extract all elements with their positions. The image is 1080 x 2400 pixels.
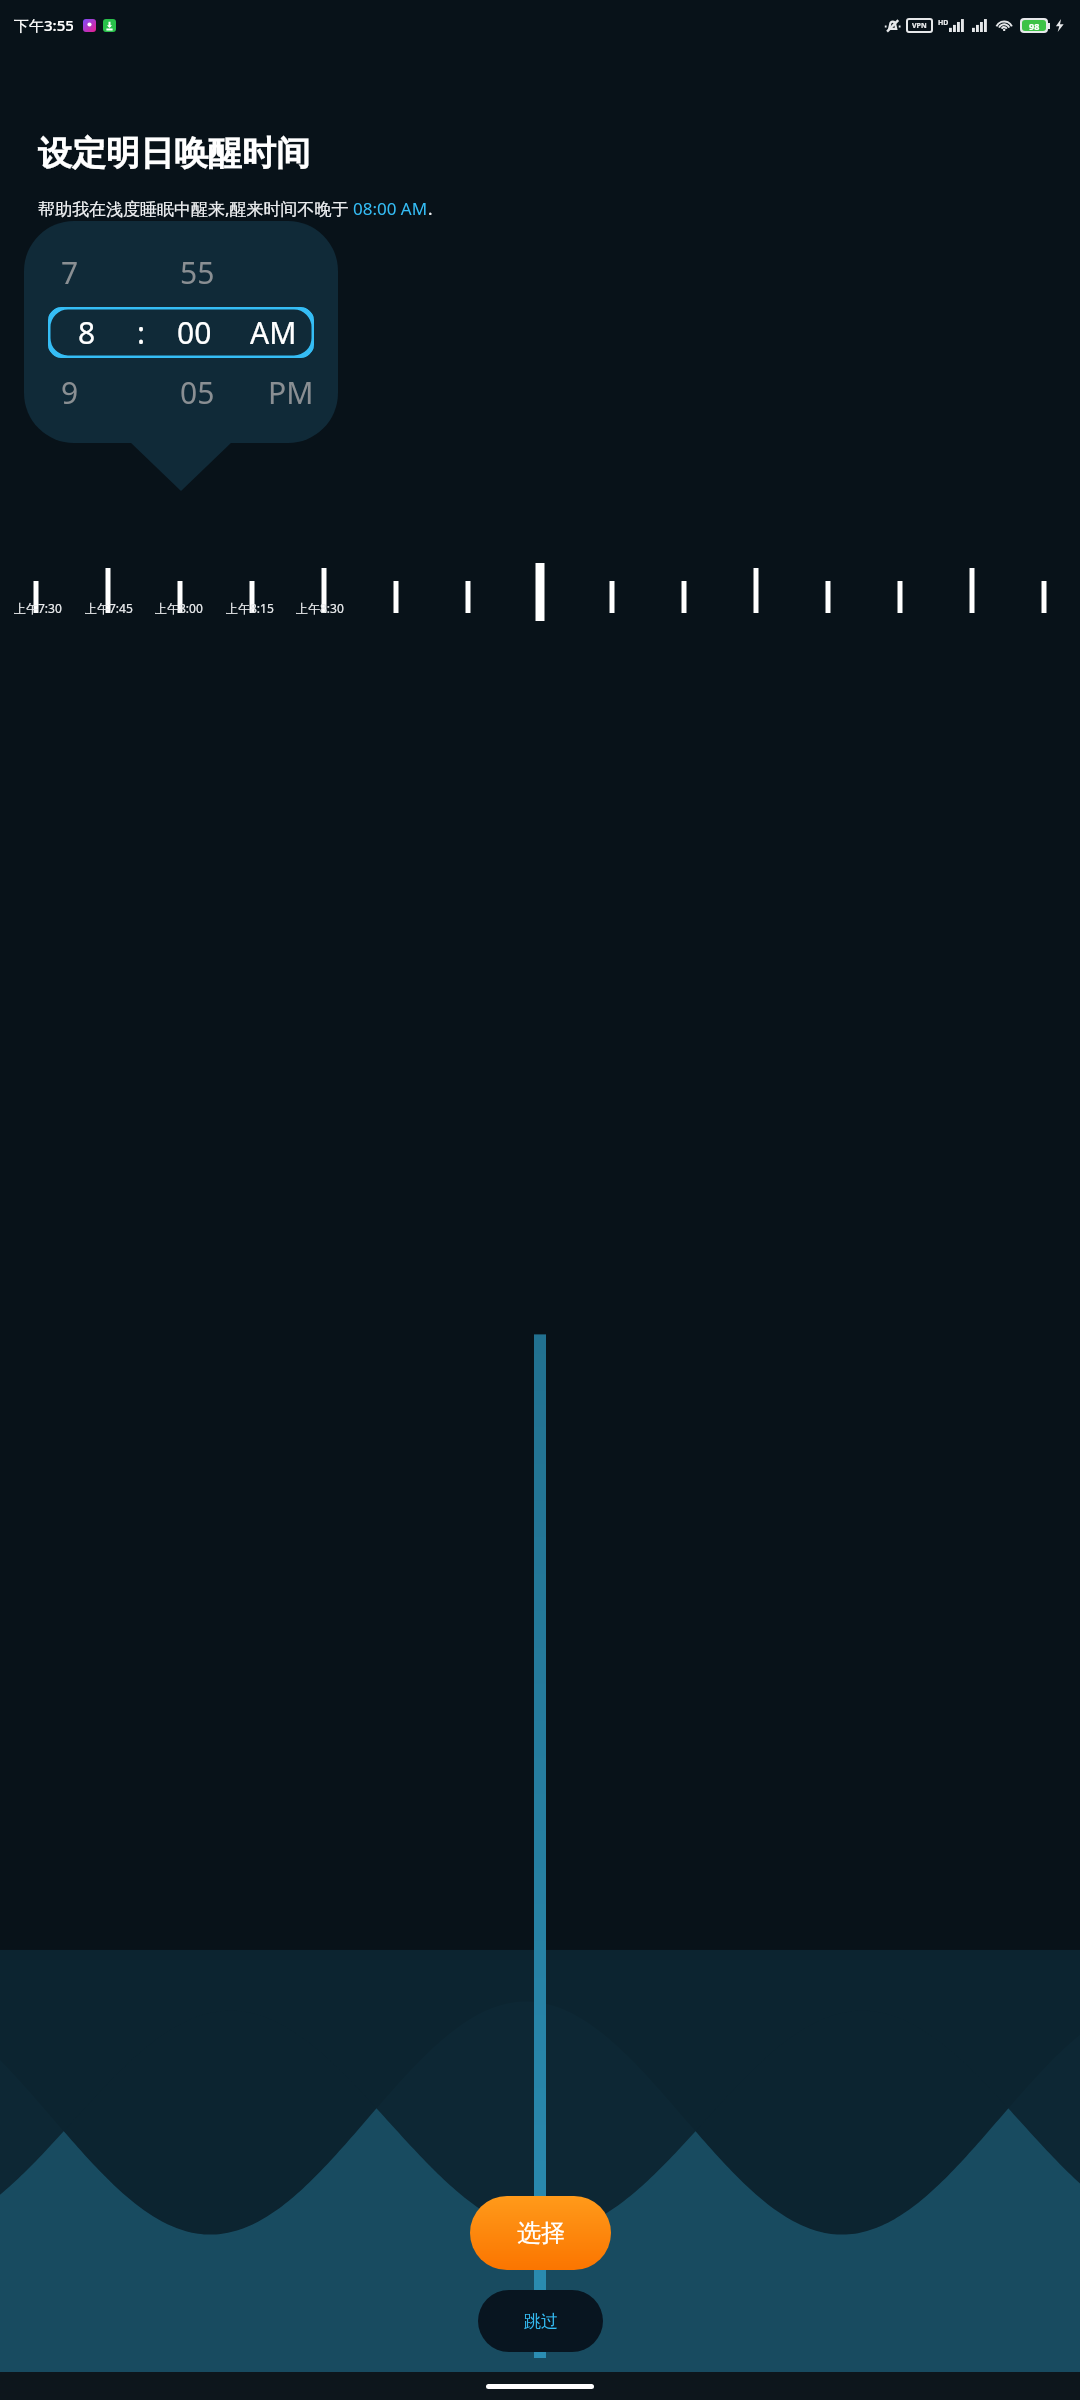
staticText: : bbox=[137, 312, 146, 353]
staticText: 上午8:00 bbox=[155, 600, 203, 616]
button[interactable]: 跳过 bbox=[478, 2290, 603, 2352]
staticText: 08:00 AM bbox=[353, 197, 428, 220]
staticText: 00 bbox=[177, 312, 212, 353]
staticText: 8 bbox=[78, 312, 96, 353]
staticText: 上午7:45 bbox=[85, 600, 133, 616]
staticText: . bbox=[428, 197, 433, 220]
button[interactable]: 选择 bbox=[470, 2196, 611, 2270]
staticText: VPN bbox=[912, 21, 927, 31]
staticText: 55 bbox=[180, 252, 215, 293]
button[interactable]: 8 bbox=[48, 307, 314, 358]
staticText: 设定明日唤醒时间 bbox=[38, 132, 310, 175]
staticText: 9 bbox=[61, 372, 79, 413]
staticText: PM bbox=[268, 372, 314, 413]
staticText: AM bbox=[250, 312, 297, 353]
staticText: 跳过 bbox=[524, 2311, 558, 2332]
staticText: 7 bbox=[61, 252, 79, 293]
staticText: 上午8:15 bbox=[226, 600, 274, 616]
staticText: 帮助我在浅度睡眠中醒来,醒来时间不晚于 bbox=[38, 197, 353, 220]
staticText: 98 bbox=[1029, 20, 1040, 31]
staticText: 上午7:30 bbox=[14, 600, 62, 616]
staticText: 下午3:55 bbox=[14, 15, 74, 35]
staticText: 05 bbox=[180, 372, 215, 413]
staticText: HD bbox=[938, 18, 949, 28]
staticText: 上午8:30 bbox=[296, 600, 344, 616]
staticText: 选择 bbox=[517, 2218, 565, 2248]
